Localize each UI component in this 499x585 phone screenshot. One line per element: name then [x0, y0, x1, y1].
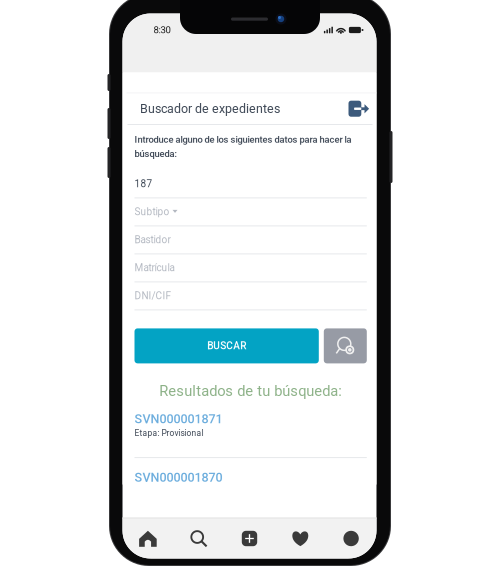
button[interactable]: Búsqueda avanzada [324, 328, 367, 363]
staticText: SVN000001871 [134, 412, 222, 426]
staticText: BUSCAR [207, 340, 246, 352]
staticText: Resultados de tu búsqueda: [159, 382, 342, 400]
staticText: Matrícula [134, 262, 174, 274]
button[interactable]: Añadir [224, 518, 275, 558]
button[interactable]: Favoritos [275, 518, 326, 558]
button[interactable]: SVN000001871 [134, 400, 367, 438]
button[interactable]: SVN000001870 [134, 458, 367, 485]
staticText: DNI/CIF [134, 290, 171, 302]
staticText: Introduce alguno de los siguientes datos… [134, 134, 351, 159]
staticText: SVN000001870 [134, 470, 222, 485]
staticText: Subtipo [134, 206, 169, 218]
staticText: Buscador de expedientes [140, 101, 280, 116]
button[interactable]: Perfil [326, 518, 376, 558]
staticText: Etapa: Provisional [134, 428, 203, 438]
button[interactable]: Cerrar sesión [348, 100, 369, 117]
button[interactable]: BUSCAR [134, 328, 319, 363]
button[interactable]: Buscar [173, 518, 224, 558]
staticText: Bastidor [134, 234, 170, 246]
staticText: 8:30 [153, 24, 170, 36]
button[interactable]: Inicio [122, 518, 173, 558]
staticText: 187 [134, 178, 152, 190]
